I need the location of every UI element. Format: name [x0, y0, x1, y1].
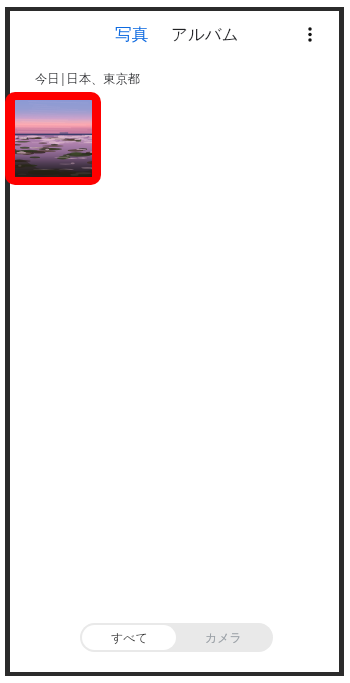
staticText: アルバム — [171, 24, 239, 45]
button[interactable]: アルバム — [166, 19, 244, 50]
staticText: カメラ — [205, 630, 242, 645]
button[interactable]: 写真 — [110, 19, 153, 50]
staticText: 写真 — [115, 24, 148, 45]
staticText: 今日|日本、東京都 — [35, 70, 141, 87]
button[interactable] — [15, 100, 92, 177]
button[interactable]: More options — [293, 17, 327, 51]
button[interactable]: すべて — [82, 625, 176, 650]
staticText: すべて — [111, 630, 148, 645]
button[interactable]: カメラ — [178, 623, 273, 652]
